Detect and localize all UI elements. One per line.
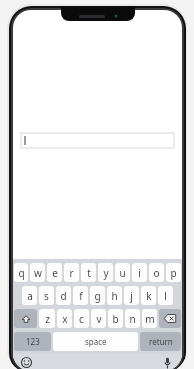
staticText: b: [112, 312, 119, 326]
staticText: m: [145, 312, 155, 326]
staticText: return: [149, 336, 173, 347]
button[interactable]: g: [90, 286, 105, 305]
button[interactable]: o: [149, 263, 164, 282]
button[interactable]: e: [47, 263, 62, 282]
button[interactable]: n: [125, 309, 140, 328]
button[interactable]: r: [64, 263, 79, 282]
staticText: r: [69, 266, 74, 280]
staticText: y: [103, 266, 109, 280]
staticText: z: [45, 312, 50, 326]
button[interactable]: c: [74, 309, 89, 328]
button[interactable]: f: [73, 286, 88, 305]
staticText: u: [119, 266, 126, 280]
staticText: space: [85, 336, 107, 347]
button[interactable]: x: [57, 309, 72, 328]
button[interactable]: [21, 133, 174, 148]
button[interactable]: q: [14, 263, 28, 282]
button[interactable]: b: [108, 309, 123, 328]
staticText: o: [153, 266, 160, 280]
button[interactable]: 123: [14, 332, 51, 351]
staticText: f: [79, 289, 83, 303]
button[interactable]: j: [124, 286, 139, 305]
button[interactable]: u: [115, 263, 130, 282]
staticText: 123: [26, 336, 40, 347]
button[interactable]: h: [107, 286, 122, 305]
staticText: j: [130, 289, 133, 303]
staticText: s: [44, 289, 49, 303]
button[interactable]: Dictation: [161, 356, 174, 369]
button[interactable]: i: [132, 263, 147, 282]
button[interactable]: k: [141, 286, 156, 305]
button[interactable]: return: [140, 332, 181, 351]
button[interactable]: v: [91, 309, 106, 328]
staticText: x: [62, 312, 68, 326]
staticText: l: [164, 289, 167, 303]
button[interactable]: d: [56, 286, 71, 305]
button[interactable]: p: [166, 263, 181, 282]
staticText: q: [18, 266, 25, 280]
staticText: p: [170, 266, 177, 280]
staticText: v: [96, 312, 102, 326]
button[interactable]: Backspace: [159, 309, 181, 328]
button[interactable]: l: [158, 286, 173, 305]
staticText: i: [138, 266, 141, 280]
button[interactable]: m: [142, 309, 157, 328]
button[interactable]: Emoji: [20, 356, 33, 369]
button[interactable]: z: [39, 309, 55, 328]
staticText: k: [146, 289, 152, 303]
button[interactable]: y: [98, 263, 113, 282]
staticText: e: [52, 266, 58, 280]
staticText: t: [87, 266, 91, 280]
button[interactable]: s: [39, 286, 54, 305]
button[interactable]: w: [30, 263, 45, 282]
button[interactable]: a: [22, 286, 37, 305]
staticText: d: [60, 289, 67, 303]
staticText: w: [34, 266, 42, 280]
staticText: a: [27, 289, 33, 303]
staticText: c: [79, 312, 84, 326]
button[interactable]: Shift: [14, 309, 37, 328]
button[interactable]: t: [81, 263, 96, 282]
staticText: g: [94, 289, 101, 303]
staticText: n: [129, 312, 136, 326]
staticText: h: [111, 289, 118, 303]
button[interactable]: space: [53, 332, 138, 351]
